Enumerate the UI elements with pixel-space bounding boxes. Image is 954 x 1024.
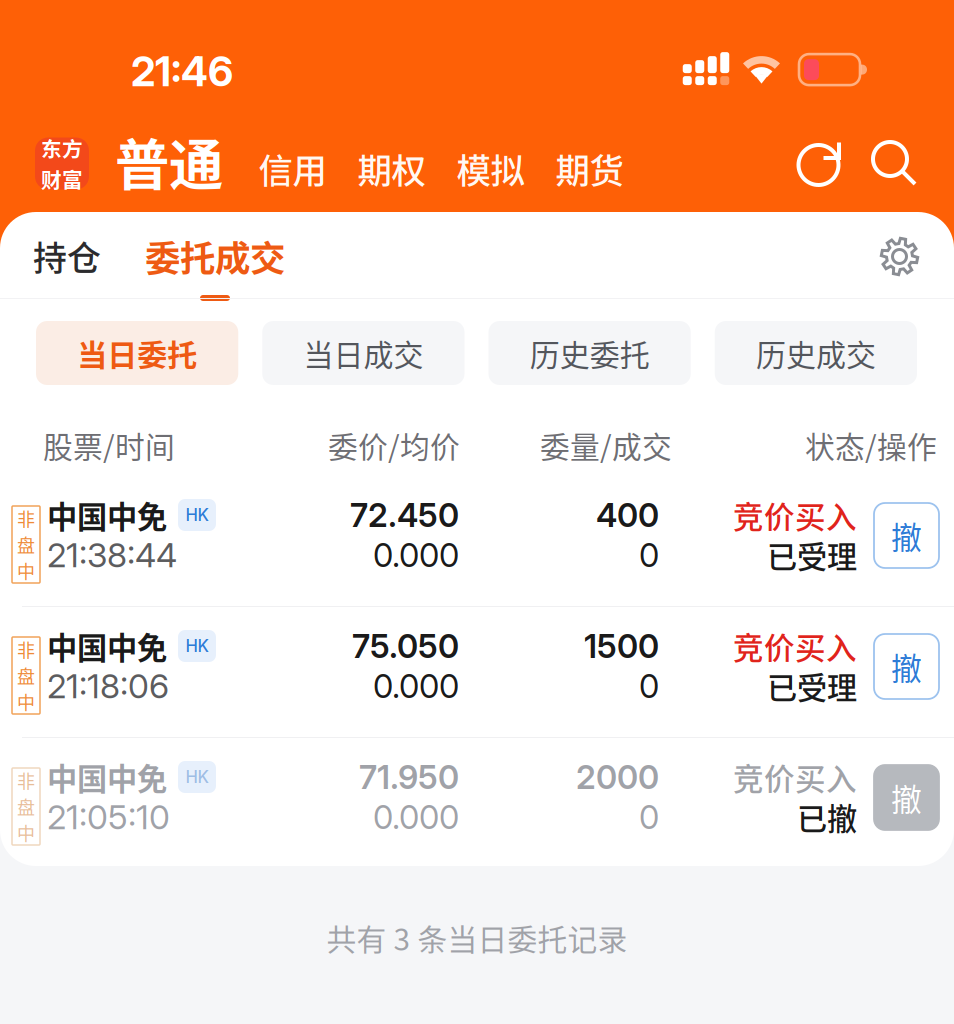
staticText: 400: [596, 495, 659, 535]
staticText: 模拟: [456, 144, 524, 193]
staticText: 0.000: [373, 535, 459, 575]
staticText: 中: [17, 819, 35, 846]
staticText: 期货: [555, 144, 623, 193]
staticText: 盘: [17, 662, 35, 689]
staticText: 0: [639, 535, 659, 575]
staticText: 委价/均价: [328, 423, 460, 467]
staticText: 0.000: [373, 797, 459, 837]
staticText: 21:18:06: [47, 666, 169, 706]
button[interactable]: 当日成交: [262, 321, 464, 385]
staticText: 普通: [115, 122, 223, 200]
button[interactable]: 委托成交: [109, 233, 285, 301]
staticText: HK: [185, 767, 208, 787]
staticText: 21:05:10: [47, 797, 170, 837]
staticText: 已撤: [797, 795, 857, 839]
staticText: 股票/时间: [43, 423, 175, 467]
staticText: 中国中免: [47, 493, 167, 537]
staticText: 状态/操作: [805, 423, 937, 467]
staticText: 已受理: [767, 664, 857, 708]
staticText: 共有 3 条当日委托记录: [326, 916, 627, 959]
button[interactable]: 当日委托: [36, 321, 238, 385]
button[interactable]: 非: [0, 607, 954, 737]
button[interactable]: 撤: [874, 503, 939, 568]
staticText: 当日委托: [77, 331, 197, 375]
staticText: 历史成交: [756, 331, 876, 375]
button[interactable]: 历史委托: [488, 321, 691, 385]
button[interactable]: Search: [841, 140, 917, 191]
staticText: 2000: [576, 757, 659, 797]
staticText: 撤: [891, 644, 922, 689]
staticText: 0.000: [373, 666, 459, 706]
button[interactable]: 期权: [342, 135, 441, 195]
staticText: 中: [17, 688, 35, 715]
button[interactable]: Refresh: [797, 140, 841, 191]
staticText: 东方: [41, 133, 83, 163]
staticText: 非: [17, 767, 35, 793]
staticText: 持仓: [33, 231, 101, 280]
staticText: 信用: [258, 144, 326, 193]
staticText: 当日成交: [303, 331, 423, 375]
staticText: 中国中免: [47, 624, 167, 668]
staticText: 0: [639, 797, 659, 837]
staticText: 撤: [891, 513, 922, 558]
button[interactable]: 非: [0, 476, 954, 606]
button[interactable]: 期货: [540, 135, 639, 195]
staticText: 财富: [41, 164, 83, 194]
button[interactable]: 持仓: [25, 233, 109, 279]
button[interactable]: 撤: [874, 765, 939, 830]
staticText: 竞价买入: [733, 755, 857, 799]
staticText: 21:46: [131, 47, 233, 96]
staticText: 委托成交: [145, 230, 285, 282]
button[interactable]: 模拟: [441, 135, 540, 195]
staticText: 1500: [584, 626, 659, 666]
staticText: 21:38:44: [47, 535, 177, 575]
staticText: 75.050: [352, 626, 459, 666]
staticText: 盘: [17, 531, 35, 558]
staticText: 已受理: [767, 533, 857, 577]
staticText: 历史委托: [530, 331, 650, 375]
staticText: 0: [639, 666, 659, 706]
staticText: 撤: [891, 775, 922, 820]
button[interactable]: 撤: [874, 634, 939, 699]
button[interactable]: 信用: [243, 135, 342, 195]
staticText: HK: [185, 505, 208, 525]
staticText: 竞价买入: [733, 624, 857, 668]
staticText: 中: [17, 557, 35, 584]
staticText: 盘: [17, 793, 35, 820]
button[interactable]: Settings: [880, 233, 954, 276]
staticText: HK: [185, 636, 208, 656]
staticText: 中国中免: [47, 755, 167, 799]
staticText: 期权: [357, 144, 425, 193]
button[interactable]: 非: [0, 738, 954, 868]
staticText: 71.950: [359, 757, 459, 797]
staticText: 竞价买入: [733, 493, 857, 537]
staticText: 72.450: [350, 495, 459, 535]
staticText: 非: [17, 505, 35, 531]
staticText: 非: [17, 636, 35, 662]
button[interactable]: 历史成交: [715, 321, 917, 385]
staticText: 委量/成交: [540, 423, 672, 467]
